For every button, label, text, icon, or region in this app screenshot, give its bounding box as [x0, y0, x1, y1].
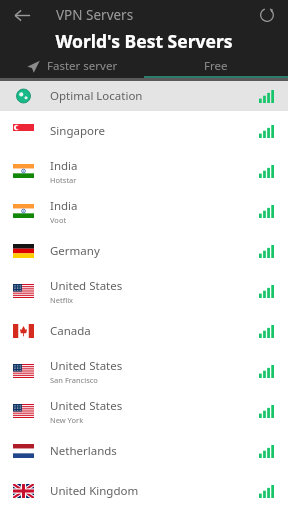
button[interactable]: Refresh — [252, 0, 282, 30]
staticText: Netflix — [50, 295, 74, 305]
button[interactable]: Faster server — [0, 54, 144, 78]
button[interactable]: Optimal Location — [0, 81, 288, 111]
button[interactable]: United States — [0, 391, 288, 431]
staticText: United States — [50, 398, 123, 414]
staticText: India — [50, 158, 78, 174]
button[interactable]: Germany — [0, 231, 288, 271]
staticText: Netherlands — [50, 443, 117, 459]
button[interactable]: United States — [0, 271, 288, 311]
button[interactable]: Singapore — [0, 111, 288, 151]
staticText: Free — [204, 58, 228, 74]
staticText: Hotstar — [50, 175, 77, 185]
staticText: India — [50, 198, 78, 214]
staticText: Canada — [50, 323, 91, 339]
staticText: Singapore — [50, 123, 105, 139]
staticText: Germany — [50, 243, 100, 259]
staticText: Voot — [50, 215, 67, 225]
button[interactable]: United States — [0, 351, 288, 391]
button[interactable]: India — [0, 191, 288, 231]
staticText: New York — [50, 415, 84, 425]
button[interactable]: Canada — [0, 311, 288, 351]
staticText: San Francisco — [50, 375, 98, 385]
staticText: Optimal Location — [50, 88, 143, 104]
staticText: VPN Servers — [56, 6, 134, 24]
staticText: United States — [50, 358, 123, 374]
button[interactable]: Free — [144, 54, 288, 78]
staticText: World's Best Servers — [0, 29, 288, 53]
button[interactable]: United Kingdom — [0, 471, 288, 511]
button[interactable]: Back — [6, 0, 38, 30]
button[interactable]: India — [0, 151, 288, 191]
staticText: Faster server — [47, 58, 118, 74]
button[interactable]: Netherlands — [0, 431, 288, 471]
staticText: United States — [50, 278, 123, 294]
staticText: United Kingdom — [50, 483, 139, 499]
